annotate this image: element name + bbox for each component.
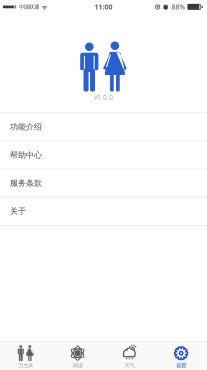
staticText: 关于 <box>10 206 26 216</box>
button[interactable]: 卫生间 <box>0 342 52 370</box>
staticText: 设置 <box>176 362 186 369</box>
staticText: 阅读 <box>73 362 83 369</box>
staticText: 帮助中心 <box>10 150 42 160</box>
button[interactable]: 天气 <box>103 342 155 370</box>
staticText: 中国联通 <box>19 4 39 10</box>
staticText: 卫生间 <box>18 362 33 369</box>
button[interactable]: 功能介绍 <box>0 113 207 141</box>
staticText: v1.0.0 <box>94 93 113 102</box>
staticText: 功能介绍 <box>10 122 42 132</box>
button[interactable]: 设置 <box>155 342 207 370</box>
staticText: 11:00 <box>94 3 112 11</box>
staticText: 服务条款 <box>10 178 42 188</box>
button[interactable]: 帮助中心 <box>0 141 207 169</box>
button[interactable]: 服务条款 <box>0 169 207 197</box>
staticText: 天气 <box>124 362 134 369</box>
staticText: 88% <box>171 3 185 11</box>
button[interactable]: 关于 <box>0 197 207 226</box>
button[interactable]: 阅读 <box>52 342 104 370</box>
